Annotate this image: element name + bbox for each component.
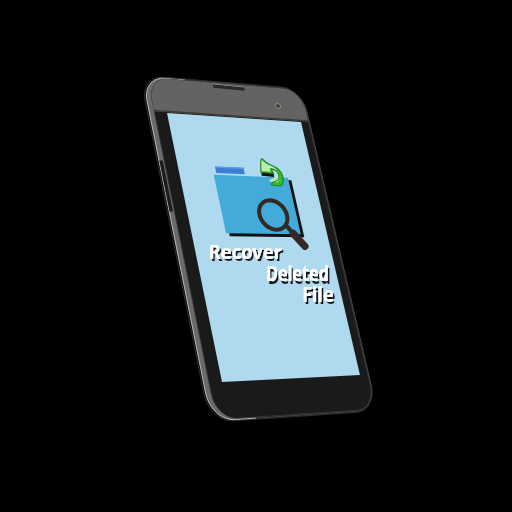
button[interactable]: Recover Deleted File [0,0,512,512]
